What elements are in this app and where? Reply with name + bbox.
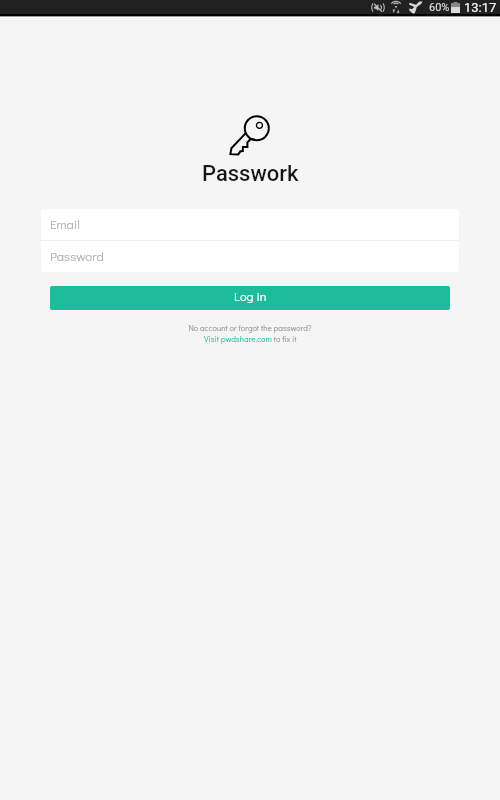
button[interactable]: Email [41,209,459,240]
staticText: 60% [429,1,450,14]
staticText: 13:17 [464,0,497,14]
button[interactable]: Log in [50,286,450,310]
staticText: to fix it [272,333,297,344]
button[interactable]: pwdshare.com [221,333,272,344]
staticText: No account or forgot the password? [188,322,312,333]
other: Passwork key logo [230,115,271,155]
staticText: Visit [204,333,221,344]
staticText: Passwork [202,161,299,187]
staticText: Email [50,215,80,232]
staticText: Log in [234,288,267,304]
button[interactable]: Password [41,241,459,272]
staticText: Password [50,247,104,264]
